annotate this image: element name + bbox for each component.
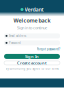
staticText: Verdant	[24, 6, 43, 13]
staticText: Sign in to continue	[17, 25, 47, 30]
button[interactable]: Forgot password?	[37, 47, 60, 51]
staticText: Create account	[17, 60, 47, 66]
staticText: By continuing you agree to our Terms	[5, 67, 58, 70]
button[interactable]: Sign In	[4, 54, 60, 59]
staticText: Email address	[9, 34, 26, 38]
button[interactable]: Create account	[4, 61, 60, 65]
staticText: Password	[9, 41, 21, 45]
staticText: Sign In	[25, 54, 39, 59]
staticText: Welcome back	[13, 17, 50, 24]
staticText: Forgot password?	[37, 47, 60, 51]
